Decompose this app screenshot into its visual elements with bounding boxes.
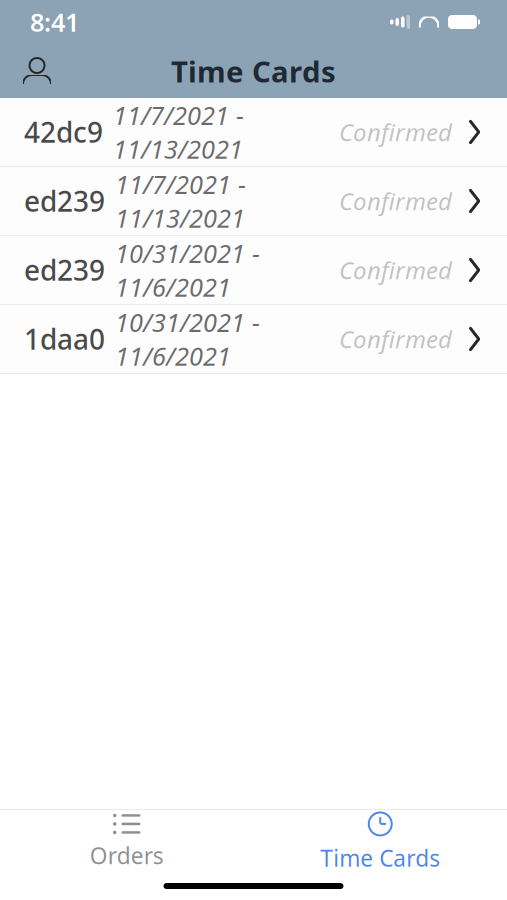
button[interactable]: Orders	[0, 803, 253, 878]
button[interactable]: Time Cards	[253, 801, 507, 881]
staticText: Confirmed	[339, 323, 452, 355]
staticText: ed239	[24, 251, 105, 289]
button[interactable]: 42dc9	[0, 98, 507, 167]
staticText: Time Cards	[171, 51, 336, 90]
staticText: Time Cards	[320, 843, 440, 873]
staticText: 8:41	[30, 5, 79, 39]
staticText: Confirmed	[339, 254, 452, 286]
button[interactable]: 1daa0	[0, 305, 507, 374]
staticText: 11/7/2021 - 11/13/2021	[115, 167, 246, 235]
staticText: 10/31/2021 - 11/6/2021	[115, 236, 260, 304]
staticText: 1daa0	[24, 320, 105, 358]
staticText: 11/7/2021 - 11/13/2021	[113, 98, 244, 166]
staticText: 42dc9	[24, 113, 103, 151]
staticText: Confirmed	[339, 116, 452, 148]
staticText: ed239	[24, 182, 105, 220]
staticText: Orders	[90, 840, 164, 870]
staticText: Confirmed	[339, 185, 452, 217]
button[interactable]: Account	[10, 49, 64, 93]
button[interactable]: ed239	[0, 236, 507, 305]
staticText: 10/31/2021 - 11/6/2021	[115, 305, 260, 373]
button[interactable]: ed239	[0, 167, 507, 236]
